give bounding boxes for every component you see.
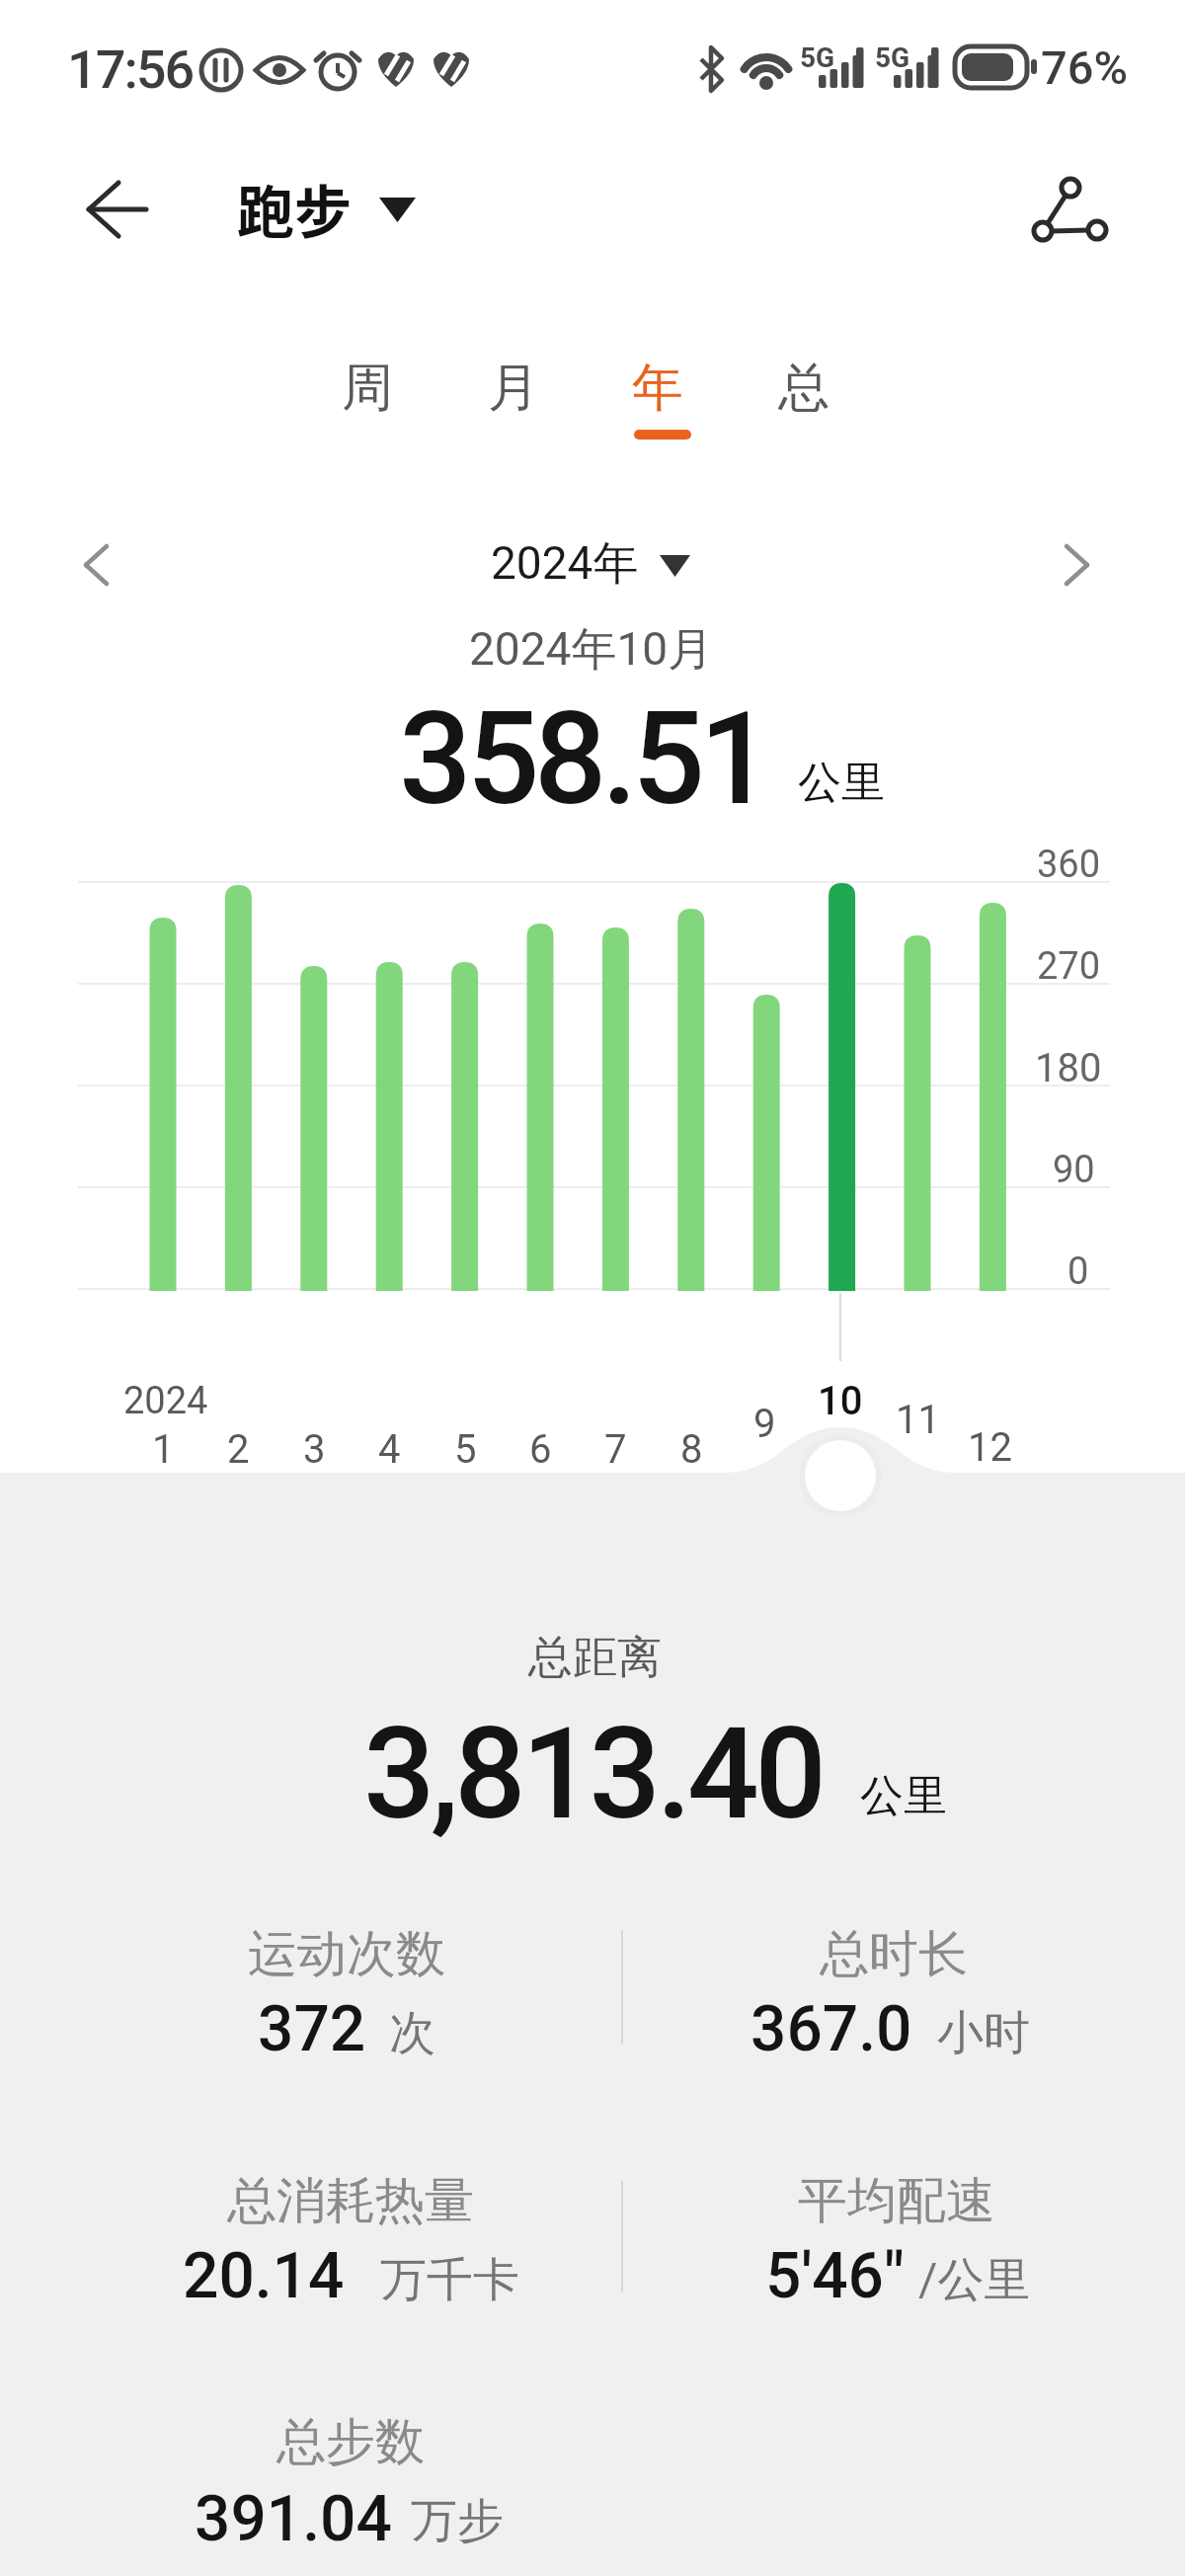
staticText: 358.51 [399, 684, 767, 834]
staticText: /公里 [918, 2251, 1031, 2309]
staticText: 2 [227, 1426, 250, 1473]
staticText: 9 [753, 1401, 776, 1447]
staticText: 2024年10月 [469, 621, 714, 679]
staticText: 总 [778, 356, 829, 421]
staticText: 万步 [411, 2492, 504, 2550]
staticText: 5'46" [765, 2239, 905, 2313]
staticText: 1 [152, 1426, 175, 1473]
staticText: 90 [1053, 1148, 1095, 1192]
staticText: 2024年 [491, 535, 639, 593]
button[interactable] [59, 528, 133, 603]
staticText: 总时长 [820, 1923, 968, 1985]
staticText: 180 [1035, 1045, 1102, 1091]
staticText: 20.14 [183, 2239, 345, 2313]
button[interactable]: 2024年 [417, 485, 713, 643]
staticText: 6 [529, 1426, 552, 1473]
staticText: 月 [488, 356, 539, 421]
staticText: 5G [875, 41, 910, 74]
staticText: 372 [258, 1992, 366, 2066]
staticText: 年 [632, 356, 683, 421]
button[interactable]: 周 [308, 309, 427, 467]
staticText: 4 [378, 1426, 401, 1473]
staticText: 3 [303, 1426, 326, 1473]
staticText: 总距离 [528, 1630, 662, 1686]
staticText: 360 [1037, 843, 1101, 887]
staticText: 391.04 [195, 2482, 392, 2556]
staticText: 公里 [798, 756, 885, 810]
staticText: 平均配速 [798, 2170, 995, 2232]
button[interactable]: 10 [796, 1322, 885, 1480]
staticText: 7 [604, 1426, 627, 1473]
staticText: 万千卡 [380, 2251, 519, 2309]
button[interactable] [1052, 528, 1126, 603]
staticText: 17:56 [67, 39, 194, 101]
staticText: 总消耗热量 [227, 2170, 474, 2232]
button[interactable]: 总 [745, 309, 863, 467]
staticText: 270 [1037, 944, 1101, 989]
staticText: 3,813.40 [363, 1700, 823, 1848]
button[interactable] [1017, 163, 1116, 257]
staticText: 跑步 [237, 167, 353, 250]
staticText: 5G [800, 41, 835, 74]
staticText: 周 [342, 356, 393, 421]
staticText: 小时 [937, 2004, 1030, 2062]
staticText: 367.0 [750, 1992, 912, 2066]
staticText: 8 [680, 1426, 703, 1473]
button[interactable]: 跑步 [146, 129, 442, 287]
staticText: 5 [454, 1426, 477, 1473]
staticText: 次 [389, 2004, 435, 2062]
button[interactable]: 月 [454, 309, 573, 467]
staticText: 10 [818, 1378, 863, 1424]
staticText: 运动次数 [248, 1923, 445, 1985]
staticText: 76% [1041, 40, 1128, 95]
staticText: 2024 [123, 1379, 208, 1423]
staticText: 12 [968, 1424, 1012, 1471]
staticText: 11 [896, 1397, 940, 1443]
button[interactable] [69, 173, 158, 252]
staticText: 0 [1067, 1249, 1089, 1294]
staticText: 总步数 [276, 2411, 425, 2473]
staticText: 公里 [860, 1769, 947, 1823]
button[interactable]: 年 [598, 309, 717, 467]
